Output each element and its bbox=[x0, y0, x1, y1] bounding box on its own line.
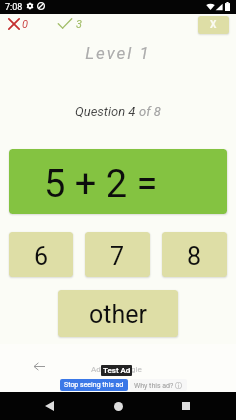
button[interactable]: Home bbox=[104, 392, 132, 420]
staticText: gle bbox=[131, 365, 142, 374]
staticText: Stop seeing this ad bbox=[64, 381, 124, 389]
staticText: X bbox=[210, 19, 217, 31]
staticText: Level 1 bbox=[0, 43, 236, 63]
staticText: other bbox=[89, 300, 147, 329]
staticText: 7 bbox=[110, 242, 125, 271]
button[interactable]: 5 + 2 = bbox=[9, 149, 227, 214]
staticText: Why this ad? ⓘ bbox=[134, 381, 183, 390]
staticText: Question 4 bbox=[75, 104, 139, 119]
button[interactable]: 7 bbox=[85, 232, 150, 277]
button[interactable]: other bbox=[58, 290, 178, 337]
staticText: Ad bbox=[91, 365, 101, 374]
button[interactable]: 6 bbox=[9, 232, 73, 277]
button[interactable]: Stop seeing this ad bbox=[60, 379, 128, 391]
staticText: Test Ad bbox=[103, 366, 131, 375]
staticText: 6 bbox=[34, 242, 49, 271]
staticText: 8 bbox=[187, 242, 202, 271]
button[interactable]: Back bbox=[35, 392, 63, 420]
staticText: 0 bbox=[22, 18, 28, 31]
staticText: 3 bbox=[76, 18, 82, 31]
button[interactable]: Close bbox=[198, 16, 229, 34]
staticText: 7:08 bbox=[5, 2, 23, 13]
button[interactable]: Recent apps bbox=[172, 392, 200, 420]
button[interactable]: Back bbox=[34, 361, 45, 372]
button[interactable]: Why this ad? ⓘ bbox=[130, 379, 187, 391]
staticText: 5 + 2 = bbox=[44, 162, 158, 207]
staticText: of 8 bbox=[139, 104, 161, 119]
button[interactable]: 8 bbox=[162, 232, 227, 277]
